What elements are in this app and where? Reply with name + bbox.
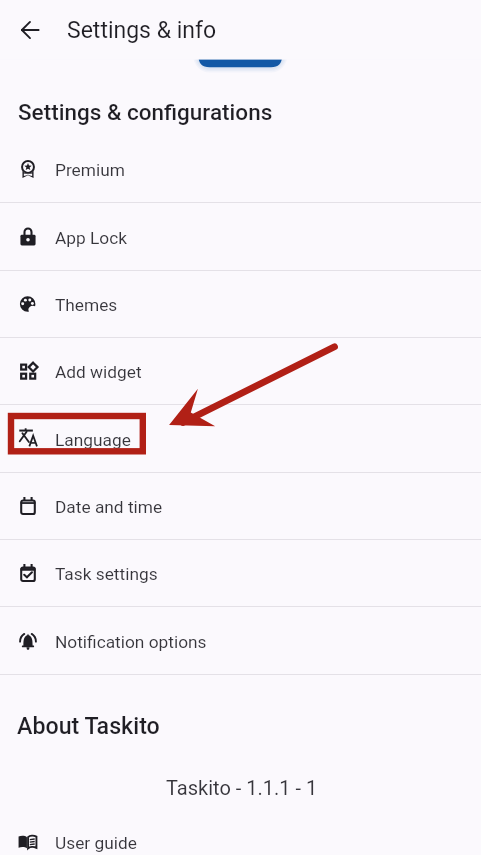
staticText: Settings & configurations [18, 99, 273, 125]
button[interactable]: Language [0, 406, 481, 473]
button[interactable]: Themes [0, 271, 481, 338]
staticText: About Taskito [17, 712, 160, 739]
staticText: App Lock [55, 228, 127, 248]
button[interactable]: User guide [0, 809, 481, 855]
staticText: Themes [55, 295, 118, 315]
button[interactable]: Date and time [0, 473, 481, 540]
button[interactable]: Premium [0, 136, 481, 203]
button[interactable]: App Lock [0, 204, 481, 271]
staticText: Date and time [55, 497, 163, 517]
button[interactable]: Add widget [0, 338, 481, 405]
staticText: Notification options [55, 632, 207, 652]
button[interactable]: Notification options [0, 608, 481, 675]
staticText: Taskito - 1.1.1 - 1 [166, 776, 318, 799]
button[interactable]: Back [8, 8, 52, 52]
staticText: Add widget [55, 362, 142, 382]
staticText: Task settings [55, 564, 158, 584]
staticText: Language [55, 430, 131, 450]
staticText: User guide [55, 833, 137, 853]
staticText: Premium [55, 160, 125, 180]
staticText: Settings & info [67, 17, 217, 44]
button[interactable]: Task settings [0, 540, 481, 607]
